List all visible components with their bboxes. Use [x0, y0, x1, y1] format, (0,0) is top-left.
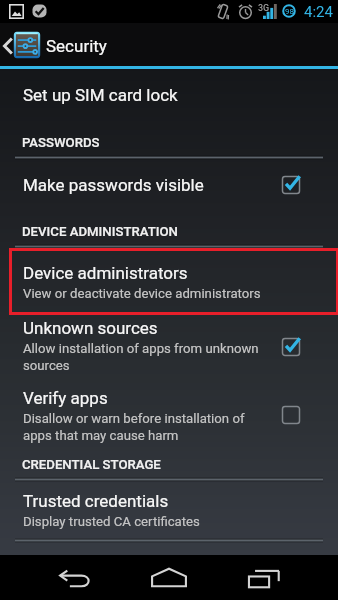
- staticText: Device administrators: [23, 263, 188, 283]
- staticText: Set up SIM card lock: [23, 85, 178, 105]
- staticText: 3G: [258, 3, 270, 14]
- staticText: 4:24: [304, 3, 333, 21]
- staticText: Verify apps: [23, 388, 108, 408]
- staticText: CREDENTIAL STORAGE: [22, 457, 161, 472]
- button[interactable]: Verify apps: [0, 382, 338, 448]
- staticText: Allow installation of apps from unknown …: [23, 341, 268, 374]
- staticText: Trusted credentials: [23, 491, 169, 511]
- button[interactable]: Back: [48, 561, 102, 594]
- button[interactable]: Make passwords visible: [0, 162, 338, 208]
- staticText: 98: [285, 7, 294, 16]
- staticText: View or deactivate device administrators: [23, 286, 261, 301]
- button[interactable]: Unknown sources: [0, 314, 338, 380]
- button[interactable]: Recent apps: [238, 561, 292, 594]
- button[interactable]: Device administrators: [0, 250, 338, 313]
- staticText: Display trusted CA certificates: [23, 514, 200, 529]
- staticText: Security: [46, 36, 107, 56]
- staticText: PASSWORDS: [22, 135, 100, 150]
- button[interactable]: Home: [143, 561, 197, 594]
- button[interactable]: Up: [0, 23, 338, 66]
- staticText: Make passwords visible: [23, 175, 204, 195]
- staticText: Unknown sources: [23, 318, 158, 338]
- button[interactable]: Trusted credentials: [0, 484, 338, 538]
- staticText: DEVICE ADMINISTRATION: [22, 224, 178, 239]
- staticText: Disallow or warn before installation of …: [23, 411, 268, 444]
- button[interactable]: Set up SIM card lock: [0, 72, 338, 120]
